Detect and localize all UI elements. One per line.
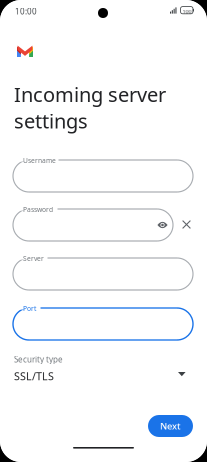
button[interactable]: Security type	[0, 352, 207, 382]
button[interactable]: Next	[148, 415, 193, 437]
button[interactable]: Server	[13, 258, 193, 290]
button[interactable]: Password	[13, 209, 173, 241]
staticText: Incoming server settings	[14, 81, 166, 134]
button[interactable]: Clear password	[182, 220, 191, 229]
staticText: Server	[23, 254, 44, 263]
staticText: Port	[23, 304, 36, 313]
button[interactable]: Username	[13, 160, 193, 192]
staticText: SSL/TLS	[14, 369, 54, 383]
staticText: Username	[23, 156, 56, 165]
button[interactable]: Show password	[157, 220, 168, 230]
staticText: Password	[23, 205, 53, 214]
staticText: Next	[160, 420, 181, 432]
staticText: 100	[183, 8, 192, 15]
staticText: 10:00	[15, 6, 37, 17]
button[interactable]: Port	[13, 308, 193, 340]
staticText: Security type	[14, 354, 63, 365]
